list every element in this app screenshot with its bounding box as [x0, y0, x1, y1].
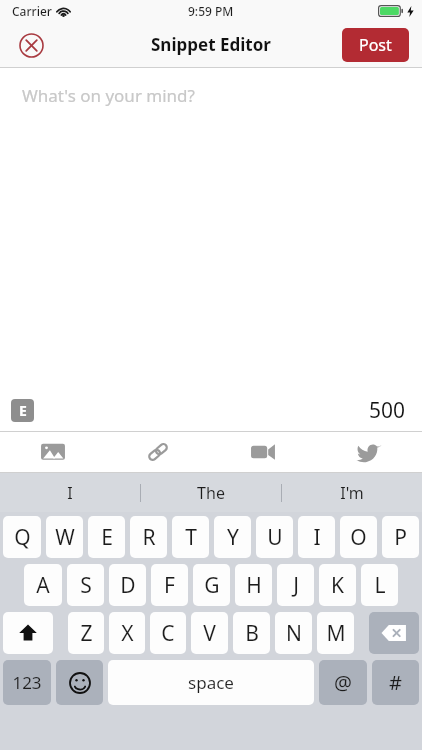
- staticText: D: [120, 571, 136, 600]
- button[interactable]: D: [109, 564, 146, 606]
- button[interactable]: space: [108, 660, 314, 705]
- staticText: I: [67, 482, 73, 504]
- button[interactable]: Post: [342, 28, 409, 62]
- button[interactable]: Z: [68, 612, 104, 654]
- button[interactable]: J: [277, 564, 314, 606]
- button[interactable]: Add photo: [0, 432, 105, 472]
- staticText: M: [326, 619, 346, 648]
- staticText: E: [19, 401, 27, 420]
- staticText: B: [245, 619, 259, 648]
- button[interactable]: A: [24, 564, 62, 606]
- staticText: 9:59 PM: [188, 3, 234, 19]
- button[interactable]: Y: [214, 516, 251, 558]
- staticText: The: [197, 482, 225, 504]
- staticText: K: [331, 571, 344, 600]
- staticText: R: [142, 523, 156, 552]
- staticText: X: [121, 619, 134, 648]
- staticText: S: [80, 571, 92, 600]
- staticText: What's on your mind?: [22, 84, 195, 107]
- button[interactable]: N: [275, 612, 312, 654]
- staticText: G: [204, 571, 220, 600]
- staticText: Post: [359, 34, 392, 56]
- button[interactable]: E: [88, 516, 125, 558]
- staticText: F: [164, 571, 175, 600]
- staticText: C: [161, 619, 175, 648]
- button[interactable]: M: [317, 612, 354, 654]
- button[interactable]: H: [235, 564, 272, 606]
- staticText: T: [185, 523, 197, 552]
- staticText: L: [374, 571, 386, 600]
- staticText: Q: [14, 523, 31, 552]
- button[interactable]: C: [150, 612, 186, 654]
- button[interactable]: 123: [3, 660, 51, 705]
- button[interactable]: L: [361, 564, 398, 606]
- button[interactable]: Close: [14, 28, 48, 62]
- button[interactable]: U: [256, 516, 293, 558]
- staticText: H: [246, 571, 262, 600]
- button[interactable]: R: [130, 516, 167, 558]
- staticText: N: [286, 619, 302, 648]
- staticText: J: [293, 571, 299, 600]
- button[interactable]: I: [298, 516, 335, 558]
- button[interactable]: Shift: [3, 612, 53, 654]
- button[interactable]: @: [319, 660, 367, 705]
- button[interactable]: I: [0, 473, 140, 512]
- staticText: space: [188, 671, 234, 694]
- button[interactable]: Share to Twitter: [316, 432, 422, 472]
- button[interactable]: P: [382, 516, 419, 558]
- staticText: Carrier: [12, 3, 52, 19]
- button[interactable]: W: [46, 516, 83, 558]
- staticText: 500: [369, 396, 406, 425]
- button[interactable]: G: [193, 564, 230, 606]
- button[interactable]: B: [233, 612, 270, 654]
- staticText: A: [36, 571, 50, 600]
- staticText: I: [313, 523, 321, 552]
- button[interactable]: The: [141, 473, 281, 512]
- button[interactable]: Q: [3, 516, 41, 558]
- staticText: Snippet Editor: [151, 33, 271, 56]
- button[interactable]: F: [151, 564, 188, 606]
- button[interactable]: #: [372, 660, 419, 705]
- button[interactable]: Backspace: [369, 612, 419, 654]
- button[interactable]: O: [340, 516, 377, 558]
- staticText: V: [203, 619, 216, 648]
- button[interactable]: Add video: [210, 432, 316, 472]
- staticText: I'm: [340, 482, 364, 504]
- button[interactable]: Add link: [105, 432, 210, 472]
- staticText: @: [334, 669, 352, 696]
- staticText: P: [394, 523, 407, 552]
- staticText: Y: [227, 523, 239, 552]
- staticText: O: [350, 523, 367, 552]
- button[interactable]: S: [67, 564, 104, 606]
- button[interactable]: Emoji: [56, 660, 103, 705]
- staticText: W: [55, 523, 75, 552]
- button[interactable]: Emphasis: [11, 399, 34, 422]
- staticText: Z: [80, 619, 93, 648]
- button[interactable]: I'm: [282, 473, 422, 512]
- button[interactable]: T: [172, 516, 209, 558]
- staticText: E: [101, 523, 113, 552]
- button[interactable]: X: [109, 612, 145, 654]
- staticText: U: [267, 523, 283, 552]
- button[interactable]: K: [319, 564, 356, 606]
- staticText: 123: [12, 671, 42, 694]
- button[interactable]: V: [191, 612, 228, 654]
- staticText: #: [389, 669, 402, 696]
